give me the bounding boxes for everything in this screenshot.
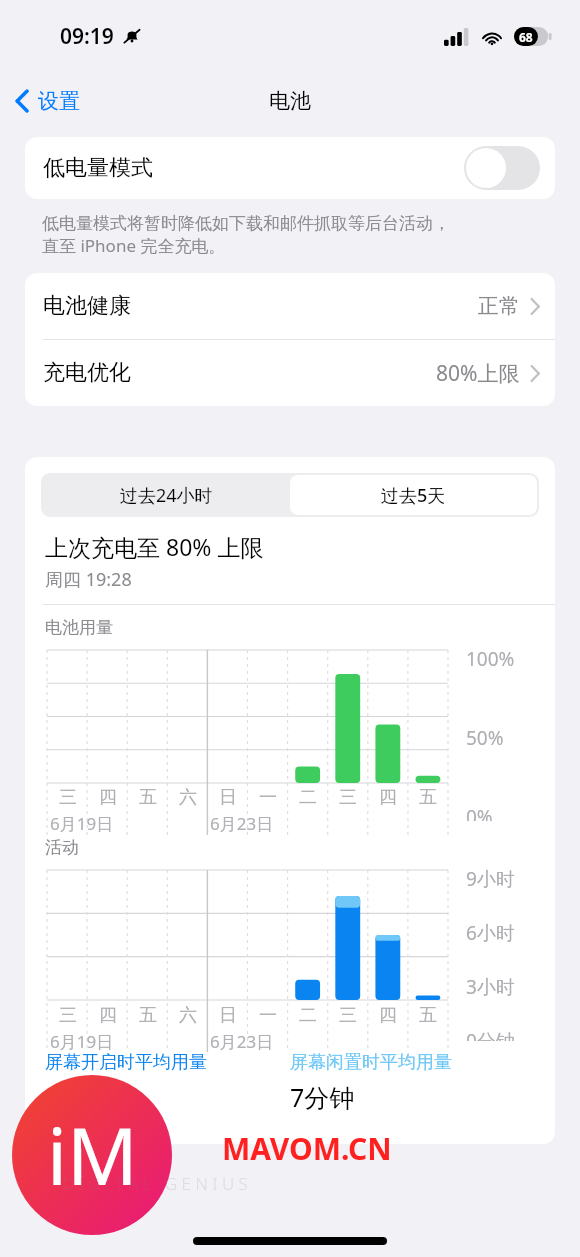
- staticText: 屏幕闲置时平均用量: [290, 1051, 452, 1074]
- staticText: 低电量模式将暂时降低如下载和邮件抓取等后台活动，: [42, 213, 450, 234]
- staticText: 09:19: [60, 22, 114, 51]
- staticText: 屏幕开启时平均用量: [45, 1051, 207, 1074]
- staticText: 50%: [466, 725, 504, 751]
- staticText: 一: [259, 1004, 277, 1027]
- staticText: 过去24小时: [120, 483, 213, 508]
- staticText: 三: [59, 786, 77, 809]
- staticText: 周四 19:28: [45, 567, 132, 592]
- staticText: 6月23日: [210, 812, 274, 835]
- staticText: 过去5天: [381, 483, 446, 508]
- staticText: 六: [179, 786, 197, 809]
- staticText: 日: [219, 786, 237, 809]
- staticText: 电池健康: [43, 292, 131, 320]
- button[interactable]: 充电优化: [25, 340, 555, 406]
- button[interactable]: 低电量模式: [25, 137, 555, 199]
- staticText: 低电量模式: [43, 154, 153, 182]
- staticText: 6小时: [466, 920, 515, 946]
- staticText: 3小时: [466, 974, 515, 1000]
- staticText: 正常: [478, 293, 520, 319]
- staticText: 9小时: [466, 866, 515, 892]
- staticText: 80%上限: [436, 359, 520, 388]
- staticText: 三: [339, 786, 357, 809]
- staticText: 三: [59, 1004, 77, 1027]
- staticText: 四: [379, 786, 397, 809]
- staticText: 二: [299, 786, 317, 809]
- staticText: 电池用量: [45, 617, 113, 638]
- staticText: MAVOM.CN: [222, 1128, 392, 1169]
- staticText: D I G I T A L G E N I U S: [62, 1172, 248, 1195]
- button[interactable]: 过去5天: [290, 475, 537, 515]
- staticText: 五: [139, 1004, 157, 1027]
- button[interactable]: Low Power Mode toggle: [464, 146, 540, 190]
- staticText: 7分钟: [290, 1080, 355, 1114]
- staticText: 四: [379, 1004, 397, 1027]
- staticText: 四: [99, 786, 117, 809]
- staticText: 日: [219, 1004, 237, 1027]
- button[interactable]: 设置: [0, 82, 92, 120]
- staticText: 6月19日: [50, 1030, 114, 1053]
- staticText: 五: [419, 1004, 437, 1027]
- staticText: 充电优化: [43, 359, 131, 387]
- staticText: 上次充电至 80% 上限: [45, 531, 264, 562]
- staticText: 五: [419, 786, 437, 809]
- staticText: 电池: [269, 88, 311, 114]
- staticText: 33分钟: [45, 1080, 124, 1114]
- staticText: iM: [47, 1102, 138, 1208]
- staticText: 活动: [45, 837, 79, 858]
- staticText: 直至 iPhone 完全充电。: [42, 234, 226, 257]
- staticText: 二: [299, 1004, 317, 1027]
- staticText: 三: [339, 1004, 357, 1027]
- staticText: 6月19日: [50, 812, 114, 835]
- staticText: 一: [259, 786, 277, 809]
- staticText: 四: [99, 1004, 117, 1027]
- staticText: 0%: [466, 804, 493, 821]
- staticText: 六: [179, 1004, 197, 1027]
- staticText: 五: [139, 786, 157, 809]
- staticText: 设置: [38, 88, 80, 114]
- staticText: 6月23日: [210, 1030, 274, 1053]
- staticText: 100%: [466, 646, 515, 672]
- button[interactable]: 电池健康: [25, 273, 555, 339]
- button[interactable]: 过去24小时: [43, 475, 290, 515]
- staticText: 0分钟: [466, 1028, 515, 1041]
- staticText: 68: [519, 29, 533, 45]
